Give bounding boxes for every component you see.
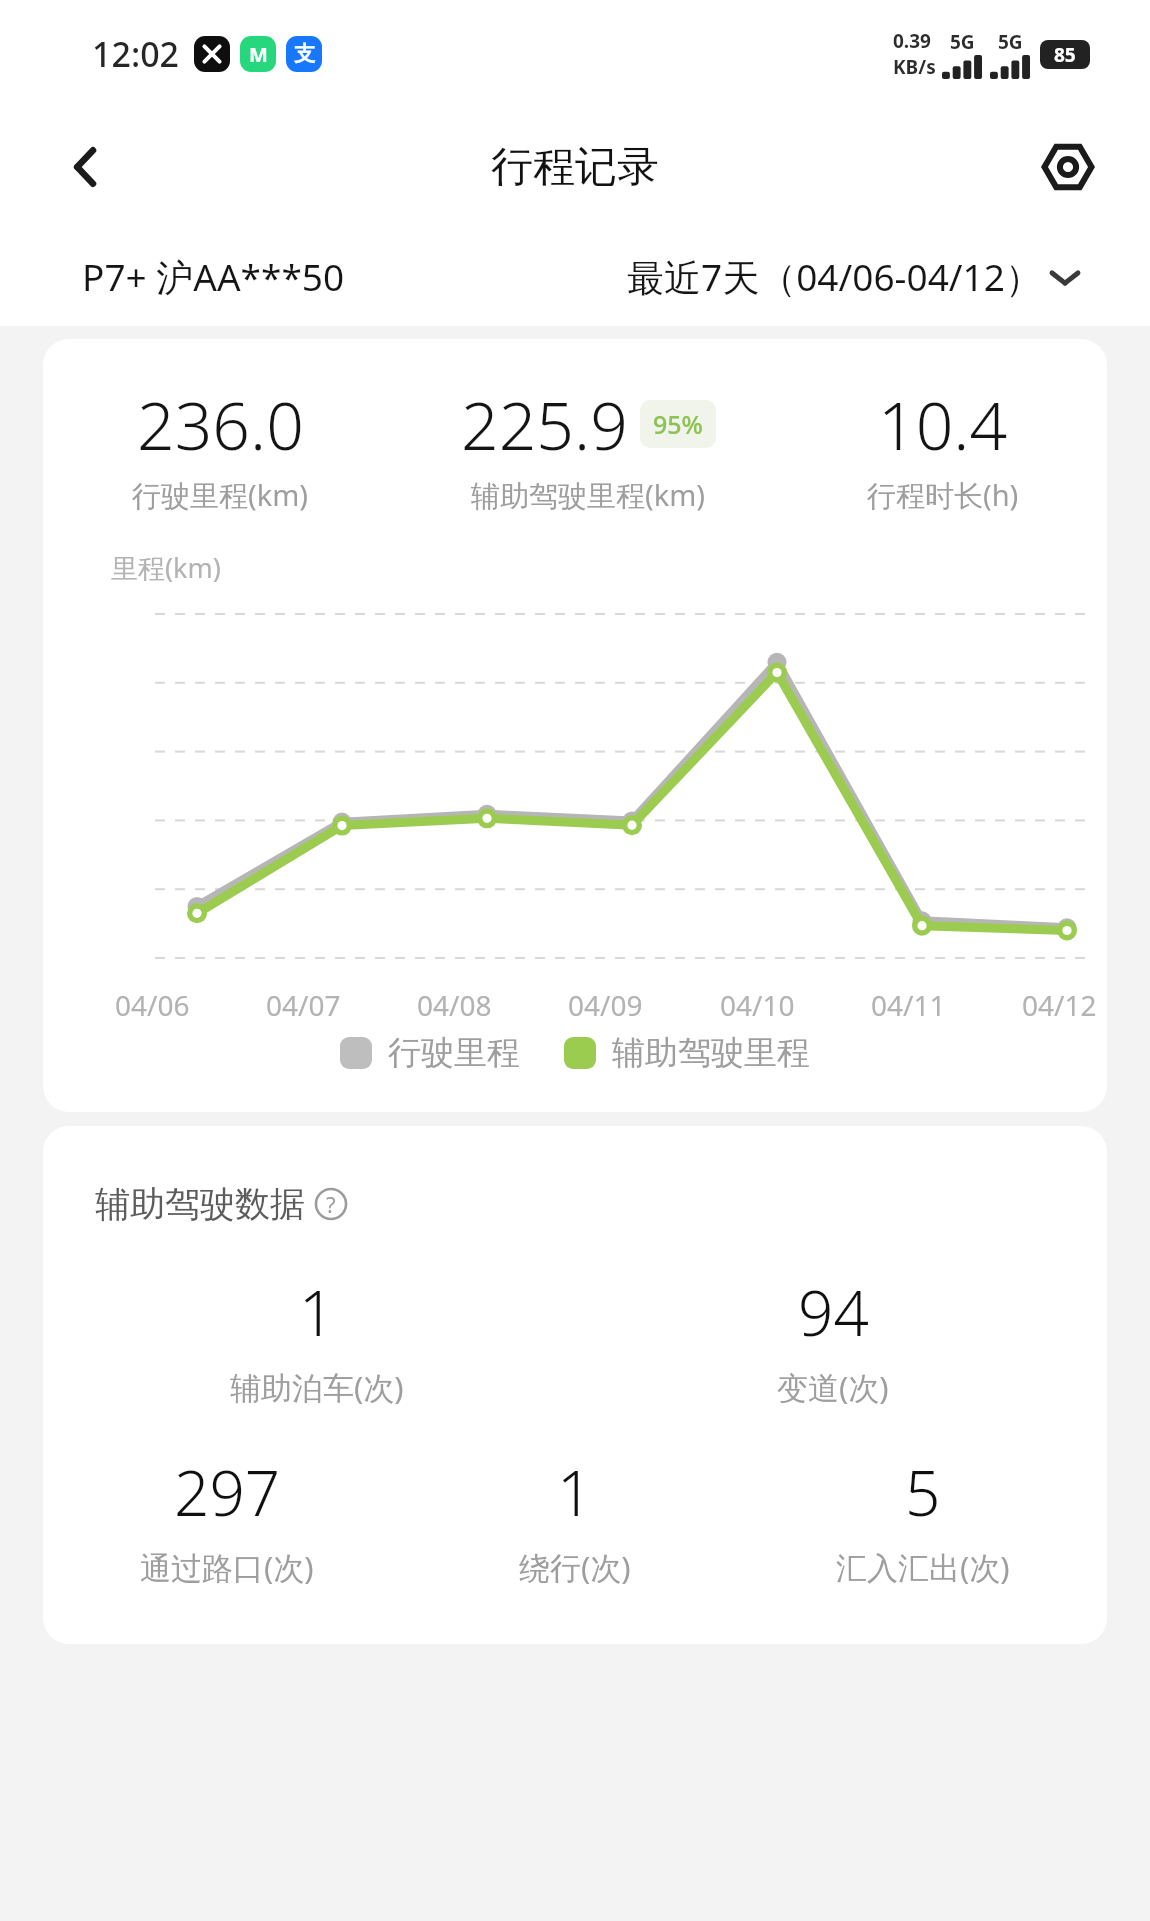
staticText: 12:02	[92, 31, 180, 77]
staticText: M	[249, 41, 268, 68]
staticText: 04/07	[266, 986, 341, 1024]
staticText: 辅助驾驶数据	[95, 1182, 305, 1226]
staticText: 04/10	[720, 986, 795, 1024]
staticText: 辅助泊车(次)	[230, 1366, 404, 1408]
button[interactable]: 最近7天（04/06-04/12）	[621, 245, 1088, 308]
staticText: 236.0	[137, 379, 304, 469]
staticText: 行驶里程(km)	[132, 475, 309, 515]
button[interactable]: 辅助驾驶数据	[43, 1126, 1107, 1644]
staticText: 变道(次)	[777, 1366, 889, 1408]
staticText: 10.4	[878, 379, 1008, 469]
staticText: 04/06	[115, 986, 190, 1024]
button[interactable]: Settings	[1030, 129, 1106, 205]
staticText: 辅助驾驶里程(km)	[471, 475, 706, 515]
staticText: 行程时长(h)	[867, 475, 1019, 515]
staticText: 04/08	[417, 986, 492, 1024]
staticText: 94	[798, 1270, 869, 1354]
staticText: 通过路口(次)	[140, 1546, 314, 1588]
staticText: 5G	[998, 29, 1023, 55]
button[interactable]: 236.0	[43, 339, 1107, 1112]
staticText: 0.39	[893, 28, 931, 54]
staticText: 最近7天（04/06-04/12）	[627, 251, 1042, 302]
staticText: 04/09	[568, 986, 643, 1024]
staticText: 5G	[950, 29, 975, 55]
button[interactable]: P7+ 沪AA***50	[78, 245, 349, 308]
staticText: 行驶里程	[388, 1032, 520, 1074]
staticText: 绕行(次)	[519, 1546, 631, 1588]
button[interactable]: Help	[309, 1182, 353, 1226]
staticText: 225.9	[461, 379, 628, 469]
button[interactable]: Back	[48, 129, 124, 205]
staticText: 04/12	[1022, 986, 1097, 1024]
staticText: 1	[299, 1270, 335, 1354]
staticText: 汇入汇出(次)	[836, 1546, 1010, 1588]
staticText: P7+ 沪AA***50	[82, 251, 345, 302]
staticText: 1	[557, 1450, 593, 1534]
staticText: 里程(km)	[111, 549, 221, 586]
staticText: 支	[294, 41, 315, 67]
staticText: 5	[905, 1450, 941, 1534]
staticText: KB/s	[893, 54, 936, 80]
staticText: 04/11	[871, 986, 946, 1024]
staticText: ?	[326, 1189, 336, 1219]
staticText: 辅助驾驶里程	[612, 1032, 810, 1074]
staticText: 297	[174, 1450, 281, 1534]
staticText: 85	[1054, 42, 1076, 68]
staticText: 95%	[653, 407, 703, 441]
staticText: 行程记录	[491, 141, 659, 194]
